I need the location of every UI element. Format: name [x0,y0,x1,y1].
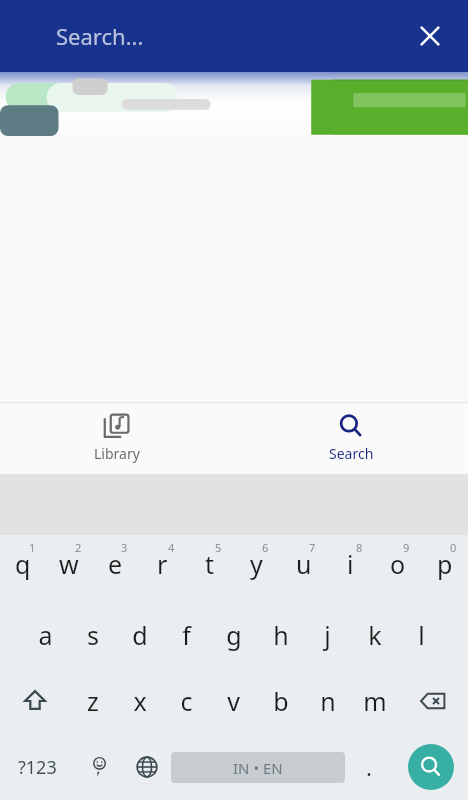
button[interactable]: f [163,602,210,668]
button[interactable]: Emoji [75,734,123,800]
staticText: 9 [403,540,410,555]
staticText: c [180,684,193,718]
button[interactable]: c [163,668,210,734]
staticText: 0 [450,540,457,555]
button[interactable]: 8 [327,535,374,602]
staticText: b [273,684,289,718]
button[interactable]: 7 [280,535,327,602]
staticText: Library [94,444,140,463]
button[interactable]: 3 [92,535,139,602]
button[interactable]: Close search [406,12,454,60]
staticText: ?123 [18,755,57,780]
button[interactable]: n [304,668,351,734]
button[interactable]: Search [234,403,468,474]
button[interactable]: z [69,668,116,734]
staticText: e [108,547,123,581]
staticText: 4 [168,540,175,555]
button[interactable]: 2 [46,535,92,602]
staticText: IN • EN [233,758,283,778]
staticText: 1 [29,540,36,555]
staticText: o [390,547,406,581]
staticText: v [227,684,240,718]
staticText: x [133,684,147,718]
button[interactable]: IN • EN [171,752,345,783]
button[interactable]: Change language [123,734,171,800]
button[interactable]: b [257,668,304,734]
button[interactable]: k [351,602,398,668]
staticText: 6 [262,540,269,555]
button[interactable]: v [210,668,257,734]
button[interactable]: 1 [0,535,46,602]
staticText: Search [329,444,374,463]
button[interactable]: 9 [374,535,421,602]
staticText: 8 [356,540,363,555]
staticText: q [15,547,31,581]
staticText: y [250,547,263,581]
button[interactable]: ?123 [0,734,75,800]
staticText: t [205,547,215,581]
button[interactable]: Shift [0,668,69,734]
button[interactable]: Search [408,744,454,790]
button[interactable]: g [210,602,257,668]
staticText: m [363,684,387,718]
staticText: s [87,618,99,652]
staticText: 5 [215,540,222,555]
button[interactable]: d [116,602,163,668]
button[interactable]: s [69,602,116,668]
button[interactable]: m [351,668,398,734]
button[interactable]: j [304,602,351,668]
button[interactable]: 0 [421,535,468,602]
staticText: z [87,684,99,718]
staticText: l [418,618,425,652]
staticText: Search... [56,21,144,51]
button[interactable]: . [345,734,393,800]
staticText: w [59,547,79,581]
staticText: u [296,547,312,581]
button[interactable]: Library [0,403,234,474]
staticText: d [132,618,148,652]
button[interactable]: Search... [56,12,356,60]
staticText: 3 [121,540,128,555]
staticText: j [324,618,331,652]
button[interactable]: Backspace [398,668,468,734]
staticText: 7 [309,540,316,555]
staticText: r [157,547,168,581]
staticText: f [182,618,191,652]
staticText: 2 [75,540,82,555]
button[interactable]: a [22,602,69,668]
button[interactable]: l [398,602,445,668]
staticText: n [320,684,336,718]
button[interactable]: 6 [233,535,280,602]
staticText: g [226,618,242,652]
button[interactable]: h [257,602,304,668]
button[interactable]: 5 [186,535,233,602]
button[interactable]: x [116,668,163,734]
staticText: i [347,547,354,581]
button[interactable]: 4 [139,535,186,602]
staticText: p [437,547,453,581]
staticText: k [368,618,382,652]
staticText: . [366,752,372,782]
staticText: h [273,618,289,652]
staticText: a [38,618,53,652]
